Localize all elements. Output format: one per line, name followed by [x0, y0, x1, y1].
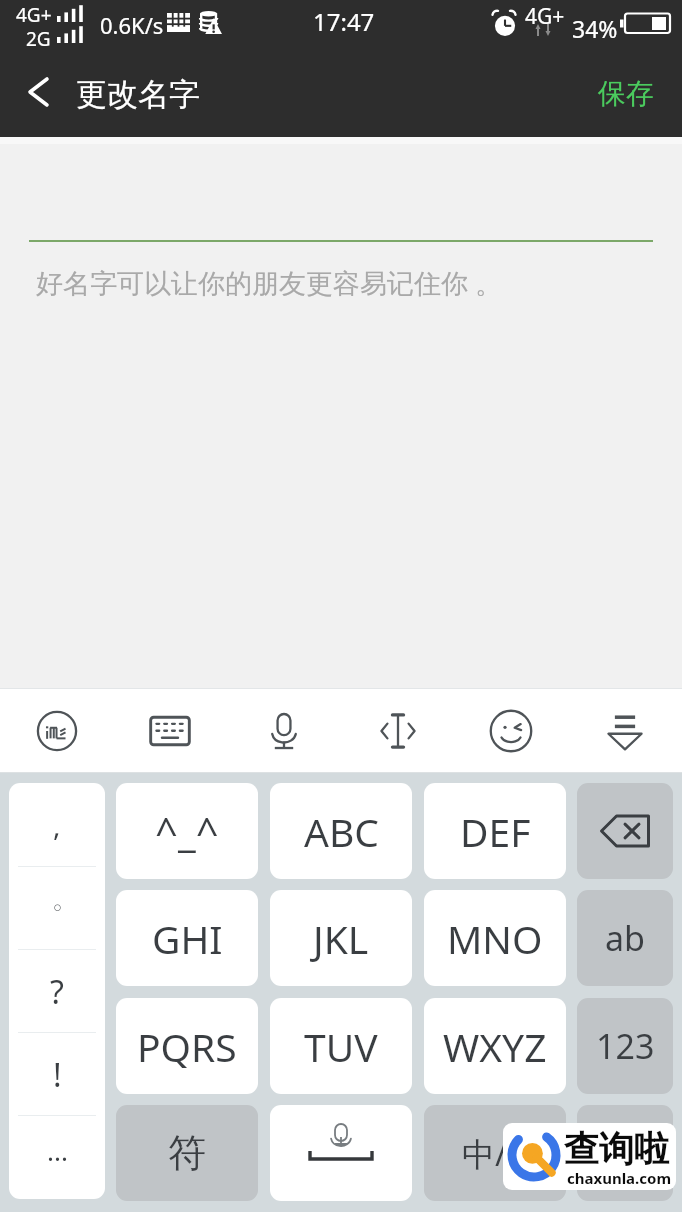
button[interactable]: Space: [270, 1105, 412, 1201]
button[interactable]: ,: [9, 783, 105, 867]
staticText: 查询啦: [564, 1127, 669, 1171]
button[interactable]: JKL: [270, 890, 412, 986]
staticText: 2G: [26, 26, 51, 52]
button[interactable]: Hide keyboard: [591, 697, 659, 765]
staticText: ◦: [51, 896, 64, 922]
staticText: ,: [53, 806, 61, 844]
staticText: WXYZ: [443, 1020, 547, 1073]
button[interactable]: ab: [577, 890, 673, 986]
button[interactable]: ABC: [270, 783, 412, 879]
staticText: 更改名字: [76, 75, 200, 114]
staticText: PQRS: [137, 1020, 237, 1073]
staticText: 好名字可以让你的朋友更容易记住你 。: [36, 264, 503, 301]
button[interactable]: Move cursor: [364, 697, 432, 765]
button[interactable]: 符: [116, 1105, 258, 1201]
button[interactable]: 中/A: [424, 1105, 566, 1201]
button[interactable]: ^_^: [116, 783, 258, 879]
staticText: 符: [168, 1129, 206, 1177]
button[interactable]: Back: [0, 57, 76, 137]
button[interactable]: ◦: [9, 867, 105, 950]
button[interactable]: DEF: [424, 783, 566, 879]
button[interactable]: Input method: [23, 697, 91, 765]
staticText: ···: [47, 1140, 68, 1175]
button[interactable]: PQRS: [116, 998, 258, 1094]
button[interactable]: Backspace: [577, 783, 673, 879]
staticText: ABC: [304, 805, 379, 858]
staticText: 4G+: [16, 2, 52, 28]
button[interactable]: GHI: [116, 890, 258, 986]
staticText: DEF: [460, 805, 531, 858]
staticText: 保存: [598, 76, 654, 111]
staticText: ^_^: [155, 804, 219, 858]
button[interactable]: !: [9, 1033, 105, 1116]
button[interactable]: WXYZ: [424, 998, 566, 1094]
staticText: JKL: [313, 912, 369, 965]
staticText: ?: [50, 970, 64, 1014]
staticText: 34%: [572, 13, 618, 44]
button[interactable]: ?: [9, 950, 105, 1033]
staticText: ab: [605, 915, 645, 961]
staticText: 123: [596, 1023, 655, 1069]
staticText: 中/A: [462, 1131, 529, 1176]
staticText: 4G+: [525, 2, 565, 31]
staticText: TUV: [304, 1020, 378, 1073]
staticText: chaxunla.com: [567, 1168, 672, 1188]
button[interactable]: Emoji: [477, 697, 545, 765]
button[interactable]: Voice input: [250, 697, 318, 765]
button[interactable]: MNO: [424, 890, 566, 986]
button[interactable]: TUV: [270, 998, 412, 1094]
button[interactable]: Keyboard layout: [136, 697, 204, 765]
staticText: 17:47: [313, 5, 375, 38]
button[interactable]: Enter: [577, 1105, 673, 1201]
staticText: GHI: [152, 912, 223, 965]
staticText: !: [53, 1053, 62, 1097]
staticText: MNO: [447, 912, 543, 965]
button[interactable]: 保存: [574, 57, 682, 137]
staticText: 0.6K/s: [100, 10, 164, 40]
button[interactable]: 123: [577, 998, 673, 1094]
button[interactable]: ···: [9, 1116, 105, 1199]
